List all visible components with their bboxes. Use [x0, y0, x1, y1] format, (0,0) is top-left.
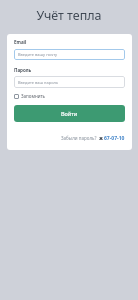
- button[interactable]: Запомнить: [14, 93, 46, 99]
- other: Call 67-07-10: [99, 136, 103, 140]
- staticText: Пароль: [14, 67, 32, 73]
- staticText: Введите ваш пароль: [18, 80, 59, 85]
- staticText: Запомнить: [21, 93, 46, 99]
- button[interactable]: Введите вашу почту: [14, 49, 125, 60]
- staticText: Email: [14, 39, 27, 45]
- button[interactable]: Введите ваш пароль: [14, 76, 125, 88]
- button[interactable]: 67-07-10: [104, 135, 125, 142]
- staticText: Введите вашу почту: [18, 52, 58, 57]
- button[interactable]: Забыли пароль?: [61, 135, 97, 141]
- staticText: Учёт тепла: [0, 7, 138, 24]
- button[interactable]: Войти: [14, 105, 125, 122]
- staticText: Войти: [61, 110, 78, 117]
